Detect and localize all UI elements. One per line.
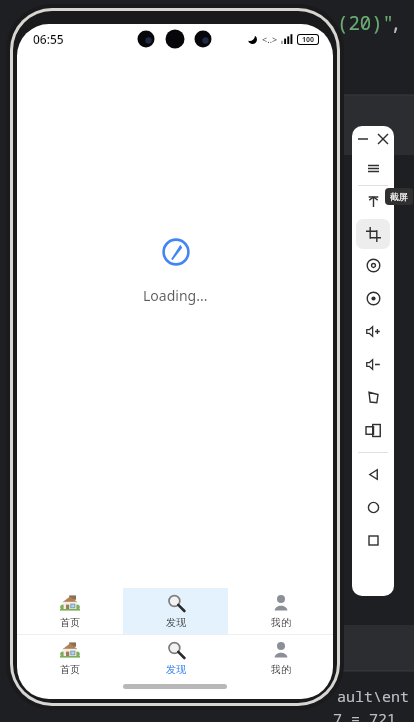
button[interactable]: 发现 [123, 588, 228, 634]
button[interactable]: 我的 [228, 635, 333, 681]
button[interactable]: 我的 [228, 588, 333, 634]
staticText: Loading... [143, 286, 208, 305]
button[interactable]: Back [352, 458, 394, 491]
staticText: (20)" [337, 10, 395, 36]
staticText: 06:55 [33, 31, 64, 47]
staticText: 首页 [60, 616, 80, 629]
button[interactable]: Volume down [352, 348, 394, 381]
button[interactable]: 首页 [17, 635, 123, 681]
button[interactable]: Close [374, 130, 392, 148]
button[interactable]: 发现 [123, 635, 228, 681]
button[interactable]: Menu [352, 152, 394, 185]
button[interactable]: Multi window [352, 414, 394, 447]
staticText: 首页 [60, 663, 80, 676]
staticText: 截屏 [390, 191, 408, 202]
button[interactable]: Power [352, 186, 394, 219]
staticText: 7 = 721 [333, 708, 397, 722]
staticText: ault\ent [337, 686, 410, 706]
button[interactable]: Minimize [354, 130, 372, 148]
staticText: , [390, 10, 402, 36]
button[interactable]: Home [352, 491, 394, 524]
staticText: <‥> [262, 33, 278, 45]
button[interactable]: Rotate right [352, 282, 394, 315]
staticText: 100 [302, 35, 315, 44]
staticText: 我的 [271, 663, 291, 676]
button[interactable]: Volume up [352, 315, 394, 348]
staticText: 发现 [166, 663, 186, 676]
staticText: 我的 [271, 616, 291, 629]
button[interactable]: Fold [352, 381, 394, 414]
button[interactable]: Screenshot [356, 219, 390, 249]
button[interactable]: 首页 [17, 588, 123, 634]
button[interactable]: Recents [352, 524, 394, 557]
staticText: 发现 [166, 616, 186, 629]
button[interactable]: Rotate left [352, 249, 394, 282]
